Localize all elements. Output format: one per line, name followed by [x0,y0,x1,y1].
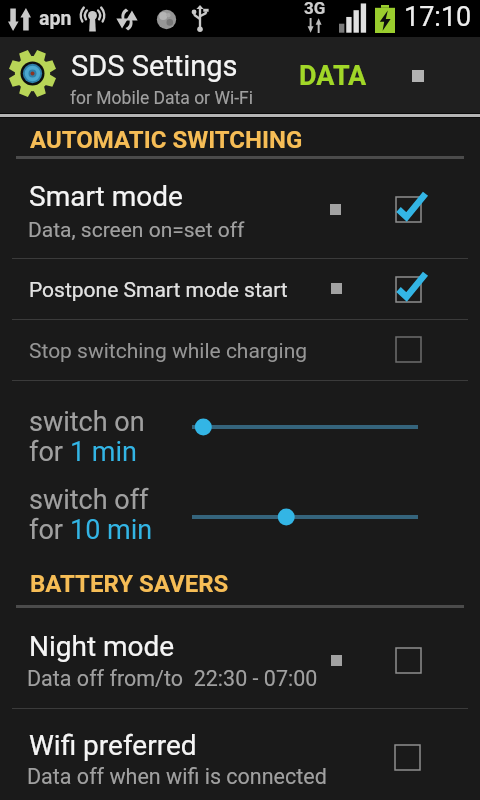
button[interactable]: Unchecked [382,732,433,783]
button[interactable] [0,320,480,380]
button[interactable]: Checked [383,184,434,235]
button[interactable]: Unchecked [383,324,434,375]
staticText: Smart mode [29,180,183,213]
staticText: Data off when wifi is connected [27,764,327,789]
staticText: 10 min [70,514,153,546]
button[interactable]: Unchecked [383,635,434,686]
staticText: 3G [304,0,326,18]
staticText: switch off [29,484,149,516]
staticText: apn [39,7,72,30]
button[interactable]: Slider [184,411,426,443]
staticText: Wifi preferred [29,729,197,762]
staticText: Postpone Smart mode start [29,278,288,303]
staticText: DATA [299,60,367,92]
staticText: for [29,514,70,546]
staticText: Night mode [29,630,175,663]
button[interactable] [0,610,480,708]
staticText: 1 min [70,436,138,468]
button[interactable]: Slider [184,501,426,533]
staticText: 17:10 [404,1,472,33]
staticText: BATTERY SAVERS [30,570,229,598]
staticText: for Mobile Data or Wi-Fi [70,88,253,109]
button[interactable]: Checked [383,264,434,315]
button[interactable]: SDS Settings [64,40,247,112]
button[interactable]: More options [392,50,444,102]
button[interactable] [0,161,480,258]
button[interactable] [0,381,480,471]
staticText: Data, screen on=set off [28,218,245,243]
staticText: SDS Settings [71,49,238,83]
staticText: AUTOMATIC SWITCHING [30,126,303,154]
staticText: switch on [29,406,145,438]
button[interactable]: DATA [287,54,379,98]
staticText: Stop switching while charging [29,339,308,364]
button[interactable] [0,471,480,561]
staticText: Data off from/to 22:30 - 07:00 [27,666,318,691]
button[interactable] [0,709,480,800]
button[interactable] [0,259,480,319]
staticText: for [29,436,70,468]
